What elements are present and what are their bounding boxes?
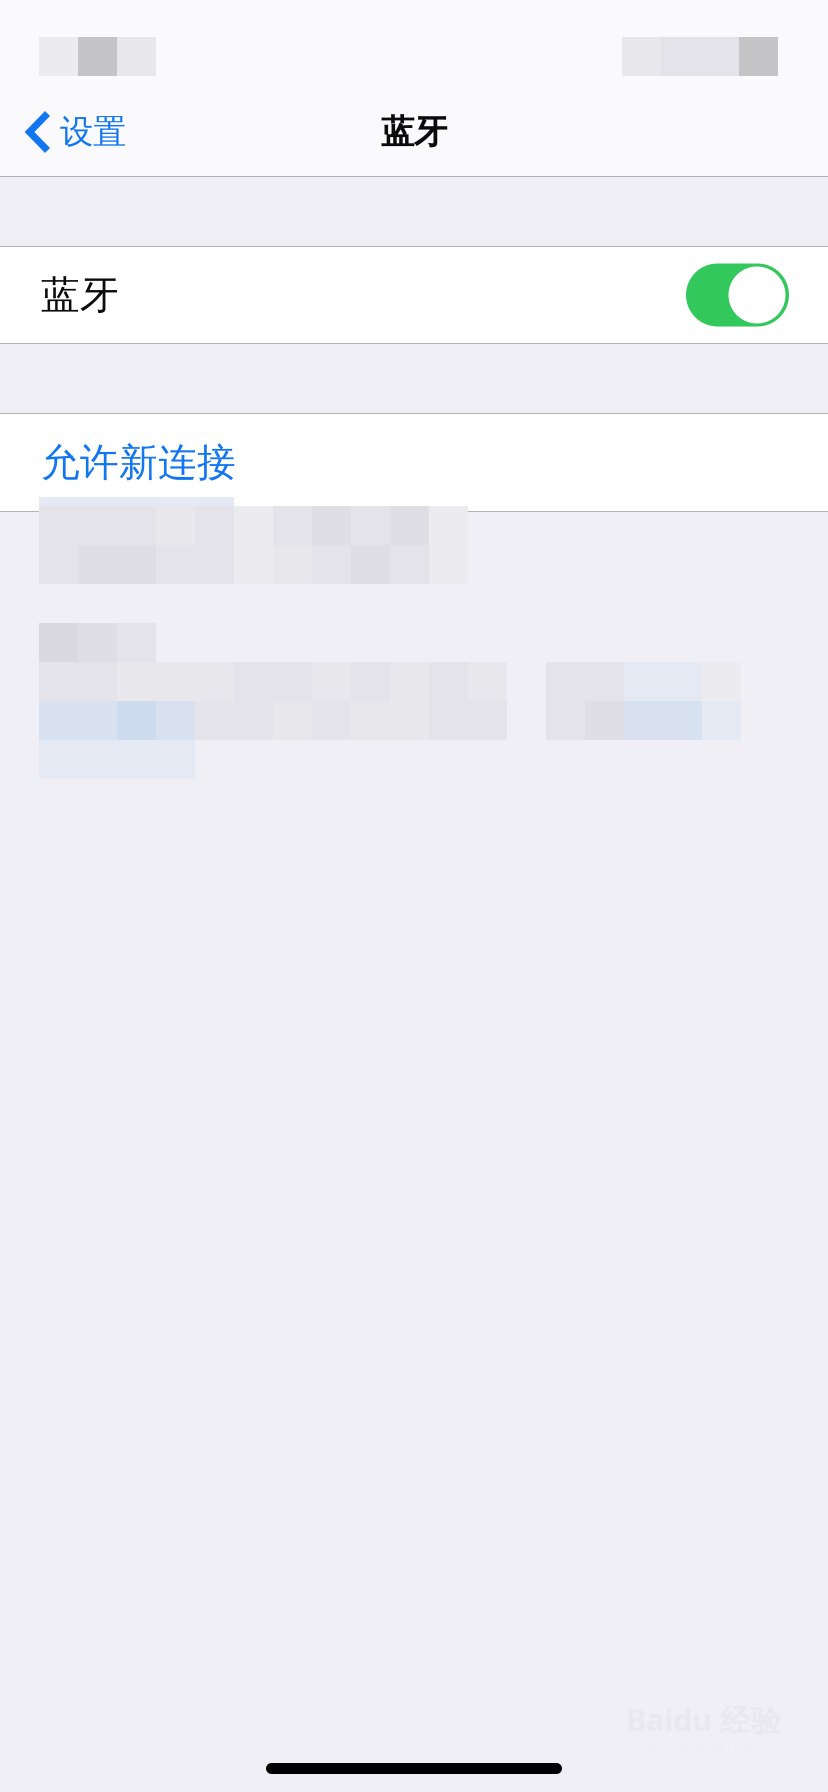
staticText: Baidu 经验 — [626, 1699, 782, 1740]
staticText: 蓝牙 — [381, 111, 447, 152]
staticText: 设置 — [60, 111, 126, 152]
staticText: 允许新连接 — [41, 439, 236, 486]
staticText: 蓝牙 — [41, 271, 119, 319]
button[interactable]: 允许新连接 — [0, 414, 828, 511]
button[interactable]: 蓝牙 — [686, 263, 789, 326]
button[interactable]: 设置 — [0, 88, 144, 176]
